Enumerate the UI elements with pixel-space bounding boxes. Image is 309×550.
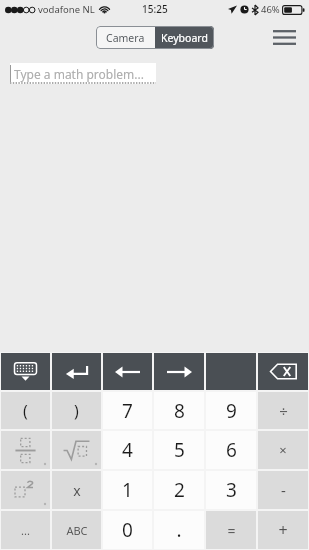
button[interactable]: ÷ <box>258 392 308 429</box>
button[interactable]: 9 <box>206 392 256 429</box>
staticText: . <box>176 517 182 543</box>
staticText: ABC <box>66 523 88 538</box>
button[interactable]: + <box>258 511 308 549</box>
staticText: 9 <box>226 398 237 424</box>
button[interactable]: Hide keyboard <box>1 353 50 390</box>
button[interactable]: Move right <box>154 353 204 390</box>
button[interactable]: 6 <box>206 431 256 469</box>
button[interactable]: 5 <box>154 431 204 469</box>
staticText: 7 <box>122 398 133 424</box>
button[interactable]: Move left <box>103 353 152 390</box>
staticText: 5 <box>174 437 185 463</box>
staticText: = <box>227 521 236 540</box>
button[interactable]: Menu <box>267 20 301 54</box>
button[interactable]: Keyboard <box>155 26 214 49</box>
staticText: 46% <box>261 3 280 16</box>
staticText: ÷ <box>279 401 288 421</box>
button[interactable]: Type a math problem... <box>10 63 156 84</box>
staticText: Camera <box>106 31 145 45</box>
button[interactable]: 1 <box>103 471 152 509</box>
button[interactable]: Backspace <box>258 353 308 390</box>
staticText: 1 <box>122 477 133 503</box>
button[interactable]: x <box>52 471 101 509</box>
staticText: Keyboard <box>161 31 208 45</box>
staticText: 6 <box>226 437 237 463</box>
staticText: 8 <box>174 398 185 424</box>
button[interactable]: Square <box>1 471 50 509</box>
button[interactable]: Fraction <box>1 431 50 469</box>
staticText: x <box>73 481 81 500</box>
button[interactable]: 3 <box>206 471 256 509</box>
button[interactable]: 4 <box>103 431 152 469</box>
button[interactable]: Camera <box>96 26 155 49</box>
staticText: 0 <box>122 517 133 543</box>
button[interactable]: - <box>258 471 308 509</box>
staticText: ... <box>21 523 30 538</box>
button[interactable]: Square root <box>52 431 101 469</box>
staticText: - <box>281 480 286 500</box>
staticText: 4 <box>122 437 133 463</box>
button[interactable]: 0 <box>103 511 152 549</box>
staticText: Type a math problem... <box>14 66 144 82</box>
staticText: vodafone NL <box>38 3 95 16</box>
button[interactable]: 2 <box>154 471 204 509</box>
staticText: 2 <box>174 477 185 503</box>
button[interactable]: ... <box>1 511 50 549</box>
staticText: 3 <box>226 477 237 503</box>
button[interactable]: ( <box>1 392 50 429</box>
staticText: × <box>279 441 287 459</box>
button[interactable]: Enter <box>52 353 101 390</box>
button[interactable]: 7 <box>103 392 152 429</box>
staticText: ) <box>74 400 79 422</box>
button[interactable]: ABC <box>52 511 101 549</box>
staticText: + <box>278 519 288 541</box>
button[interactable]: ) <box>52 392 101 429</box>
button[interactable]: = <box>206 511 256 549</box>
button[interactable]: 8 <box>154 392 204 429</box>
button[interactable]: . <box>154 511 204 549</box>
button[interactable]: × <box>258 431 308 469</box>
staticText: ( <box>23 400 28 422</box>
staticText: 15:25 <box>142 2 168 16</box>
